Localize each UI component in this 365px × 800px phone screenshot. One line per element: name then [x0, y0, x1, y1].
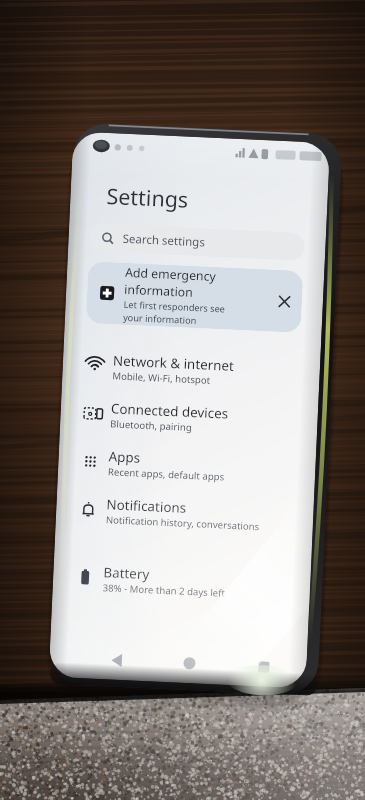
button[interactable]: Add emergency [92, 258, 309, 330]
staticText: Notification history, conversations [112, 510, 266, 530]
staticText: Connected devices [117, 396, 235, 420]
button[interactable]: Network & internet [68, 337, 327, 397]
staticText: Battery [109, 560, 156, 580]
staticText: 38% - More than 2 days left [109, 578, 232, 597]
button[interactable]: Back [108, 641, 139, 673]
button[interactable]: Home [180, 645, 211, 676]
staticText: information [130, 278, 200, 298]
staticText: Settings [112, 178, 195, 211]
staticText: Notifications [112, 492, 193, 514]
button[interactable]: Apps [64, 433, 322, 493]
staticText: Apps [114, 444, 147, 464]
staticText: Recent apps, default apps [114, 462, 231, 481]
staticText: Search settings [128, 228, 212, 247]
staticText: your information [129, 308, 203, 324]
staticText: Add emergency [131, 261, 223, 282]
button[interactable]: Dismiss [275, 284, 305, 313]
button[interactable]: Connected devices [66, 385, 325, 445]
staticText: Bluetooth, pairing [116, 414, 199, 431]
button[interactable]: Notifications [61, 481, 320, 541]
staticText: Let first responders see [129, 295, 232, 312]
button[interactable]: Search settings [95, 220, 311, 258]
staticText: Network & internet [119, 348, 240, 372]
staticText: Mobile, Wi-Fi, hotspot [118, 366, 217, 384]
button[interactable]: Battery [58, 549, 317, 609]
button[interactable]: Recent apps [254, 648, 285, 679]
